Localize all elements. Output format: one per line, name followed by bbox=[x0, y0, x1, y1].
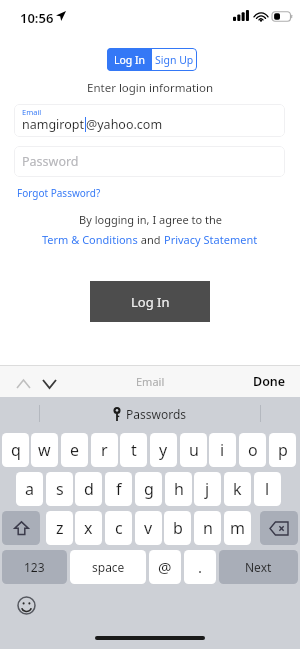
button[interactable]: k bbox=[224, 472, 251, 506]
staticText: x bbox=[84, 517, 93, 539]
staticText: namgiropt bbox=[22, 116, 85, 133]
button[interactable]: Email bbox=[14, 104, 285, 137]
button[interactable]: Backspace bbox=[260, 511, 298, 545]
staticText: p bbox=[278, 439, 288, 461]
button[interactable]: Next bbox=[219, 550, 298, 584]
button[interactable]: v bbox=[135, 511, 162, 545]
staticText: h bbox=[174, 478, 184, 500]
button[interactable]: 123 bbox=[2, 550, 67, 584]
staticText: . bbox=[198, 557, 203, 577]
staticText: and bbox=[138, 232, 164, 247]
staticText: Log In bbox=[131, 293, 170, 311]
staticText: o bbox=[248, 439, 258, 461]
button[interactable]: u bbox=[180, 433, 207, 467]
button[interactable]: s bbox=[46, 472, 73, 506]
staticText: i bbox=[220, 439, 225, 461]
staticText: Passwords bbox=[126, 406, 187, 422]
button[interactable]: g bbox=[135, 472, 162, 506]
button[interactable]: Forgot Password? bbox=[17, 186, 101, 200]
staticText: s bbox=[56, 478, 64, 500]
staticText: Email bbox=[22, 107, 42, 117]
button[interactable]: a bbox=[16, 472, 43, 506]
button[interactable]: l bbox=[254, 472, 281, 506]
button[interactable]: Term & Conditions bbox=[42, 232, 138, 247]
staticText: m bbox=[230, 517, 245, 539]
staticText: Forgot Password? bbox=[17, 186, 101, 200]
button[interactable]: x bbox=[75, 511, 102, 545]
staticText: k bbox=[233, 478, 242, 500]
button[interactable]: i bbox=[209, 433, 236, 467]
button[interactable]: b bbox=[164, 511, 191, 545]
staticText: @yahoo.com bbox=[86, 116, 163, 133]
button[interactable]: w bbox=[31, 433, 58, 467]
staticText: y bbox=[159, 439, 168, 461]
button[interactable]: Password bbox=[14, 146, 285, 177]
button[interactable]: t bbox=[120, 433, 147, 467]
staticText: @ bbox=[158, 557, 172, 577]
button[interactable]: Emoji bbox=[17, 596, 36, 615]
staticText: c bbox=[115, 517, 123, 539]
button[interactable]: . bbox=[184, 550, 216, 584]
staticText: r bbox=[101, 439, 108, 461]
button[interactable]: Log In bbox=[90, 281, 210, 322]
staticText: z bbox=[56, 517, 64, 539]
button[interactable]: Shift bbox=[2, 511, 40, 545]
button[interactable]: m bbox=[224, 511, 251, 545]
button[interactable]: z bbox=[46, 511, 73, 545]
button[interactable]: Sign Up bbox=[152, 48, 197, 71]
button[interactable]: Privacy Statement bbox=[164, 232, 258, 247]
staticText: Email bbox=[136, 374, 165, 389]
staticText: t bbox=[131, 439, 137, 461]
button[interactable]: n bbox=[194, 511, 221, 545]
button[interactable]: Done bbox=[253, 373, 286, 390]
staticText: Done bbox=[253, 373, 286, 390]
button[interactable]: j bbox=[194, 472, 221, 506]
staticText: d bbox=[84, 478, 94, 500]
button[interactable]: Passwords bbox=[0, 397, 300, 430]
button[interactable]: Previous field bbox=[12, 373, 34, 395]
button[interactable]: Log In bbox=[107, 48, 152, 71]
staticText: Next bbox=[245, 559, 272, 575]
button[interactable]: f bbox=[105, 472, 132, 506]
staticText: a bbox=[25, 478, 34, 500]
staticText: g bbox=[144, 478, 154, 500]
staticText: Sign Up bbox=[155, 53, 194, 67]
button[interactable]: p bbox=[269, 433, 296, 467]
staticText: u bbox=[189, 439, 199, 461]
staticText: l bbox=[265, 478, 270, 500]
staticText: Log In bbox=[114, 53, 146, 67]
button[interactable]: h bbox=[165, 472, 192, 506]
button[interactable]: c bbox=[105, 511, 132, 545]
staticText: b bbox=[173, 517, 183, 539]
staticText: q bbox=[11, 439, 21, 461]
staticText: w bbox=[38, 439, 51, 461]
button[interactable]: d bbox=[75, 472, 102, 506]
button[interactable]: e bbox=[61, 433, 88, 467]
staticText: Password bbox=[22, 153, 79, 170]
staticText: Enter login information bbox=[87, 80, 214, 96]
staticText: By logging in, I agree to the bbox=[79, 212, 222, 227]
button[interactable]: y bbox=[150, 433, 177, 467]
button[interactable]: Next field bbox=[38, 373, 60, 395]
staticText: Privacy Statement bbox=[164, 232, 258, 247]
staticText: j bbox=[205, 478, 210, 500]
staticText: f bbox=[116, 478, 122, 500]
staticText: space bbox=[92, 559, 125, 575]
button[interactable]: space bbox=[70, 550, 146, 584]
staticText: n bbox=[203, 517, 213, 539]
button[interactable]: r bbox=[91, 433, 118, 467]
staticText: Term & Conditions bbox=[42, 232, 138, 247]
button[interactable]: o bbox=[239, 433, 266, 467]
button[interactable]: @ bbox=[149, 550, 181, 584]
staticText: v bbox=[144, 517, 153, 539]
staticText: 10:56 bbox=[20, 9, 54, 27]
staticText: e bbox=[70, 439, 80, 461]
staticText: 123 bbox=[24, 559, 45, 575]
button[interactable]: q bbox=[2, 433, 29, 467]
